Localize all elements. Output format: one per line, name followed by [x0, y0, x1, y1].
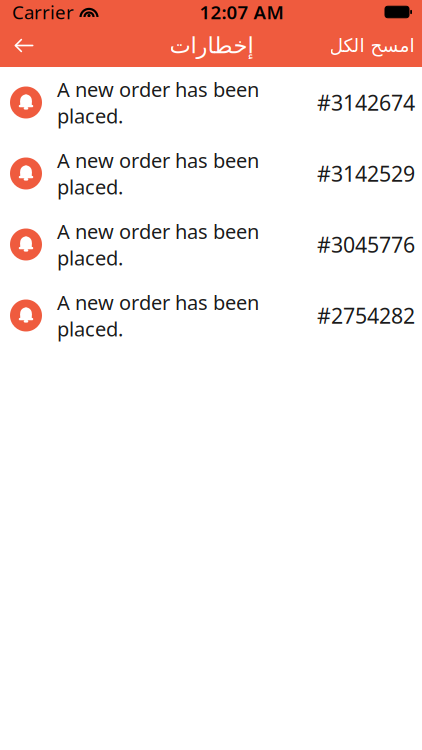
staticText: 12:07 AM [199, 0, 283, 24]
staticText: A new order has been placed. [57, 147, 259, 200]
staticText: #3142529 [317, 159, 415, 188]
staticText: #2754282 [317, 301, 415, 330]
button[interactable]: A new order has been placed. [0, 209, 422, 280]
staticText: #3045776 [317, 230, 415, 259]
button[interactable]: A new order has been placed. [0, 138, 422, 209]
staticText: Carrier [12, 0, 74, 24]
staticText: A new order has been placed. [57, 289, 259, 342]
staticText: امسح الكل [329, 35, 414, 56]
button[interactable]: امسح الكل [329, 24, 422, 67]
button[interactable]: Back [0, 24, 48, 67]
button[interactable]: A new order has been placed. [0, 280, 422, 351]
staticText: إخطارات [169, 33, 253, 58]
staticText: #3142674 [317, 88, 415, 117]
staticText: A new order has been placed. [57, 218, 259, 271]
staticText: A new order has been placed. [57, 76, 259, 129]
button[interactable]: A new order has been placed. [0, 67, 422, 138]
